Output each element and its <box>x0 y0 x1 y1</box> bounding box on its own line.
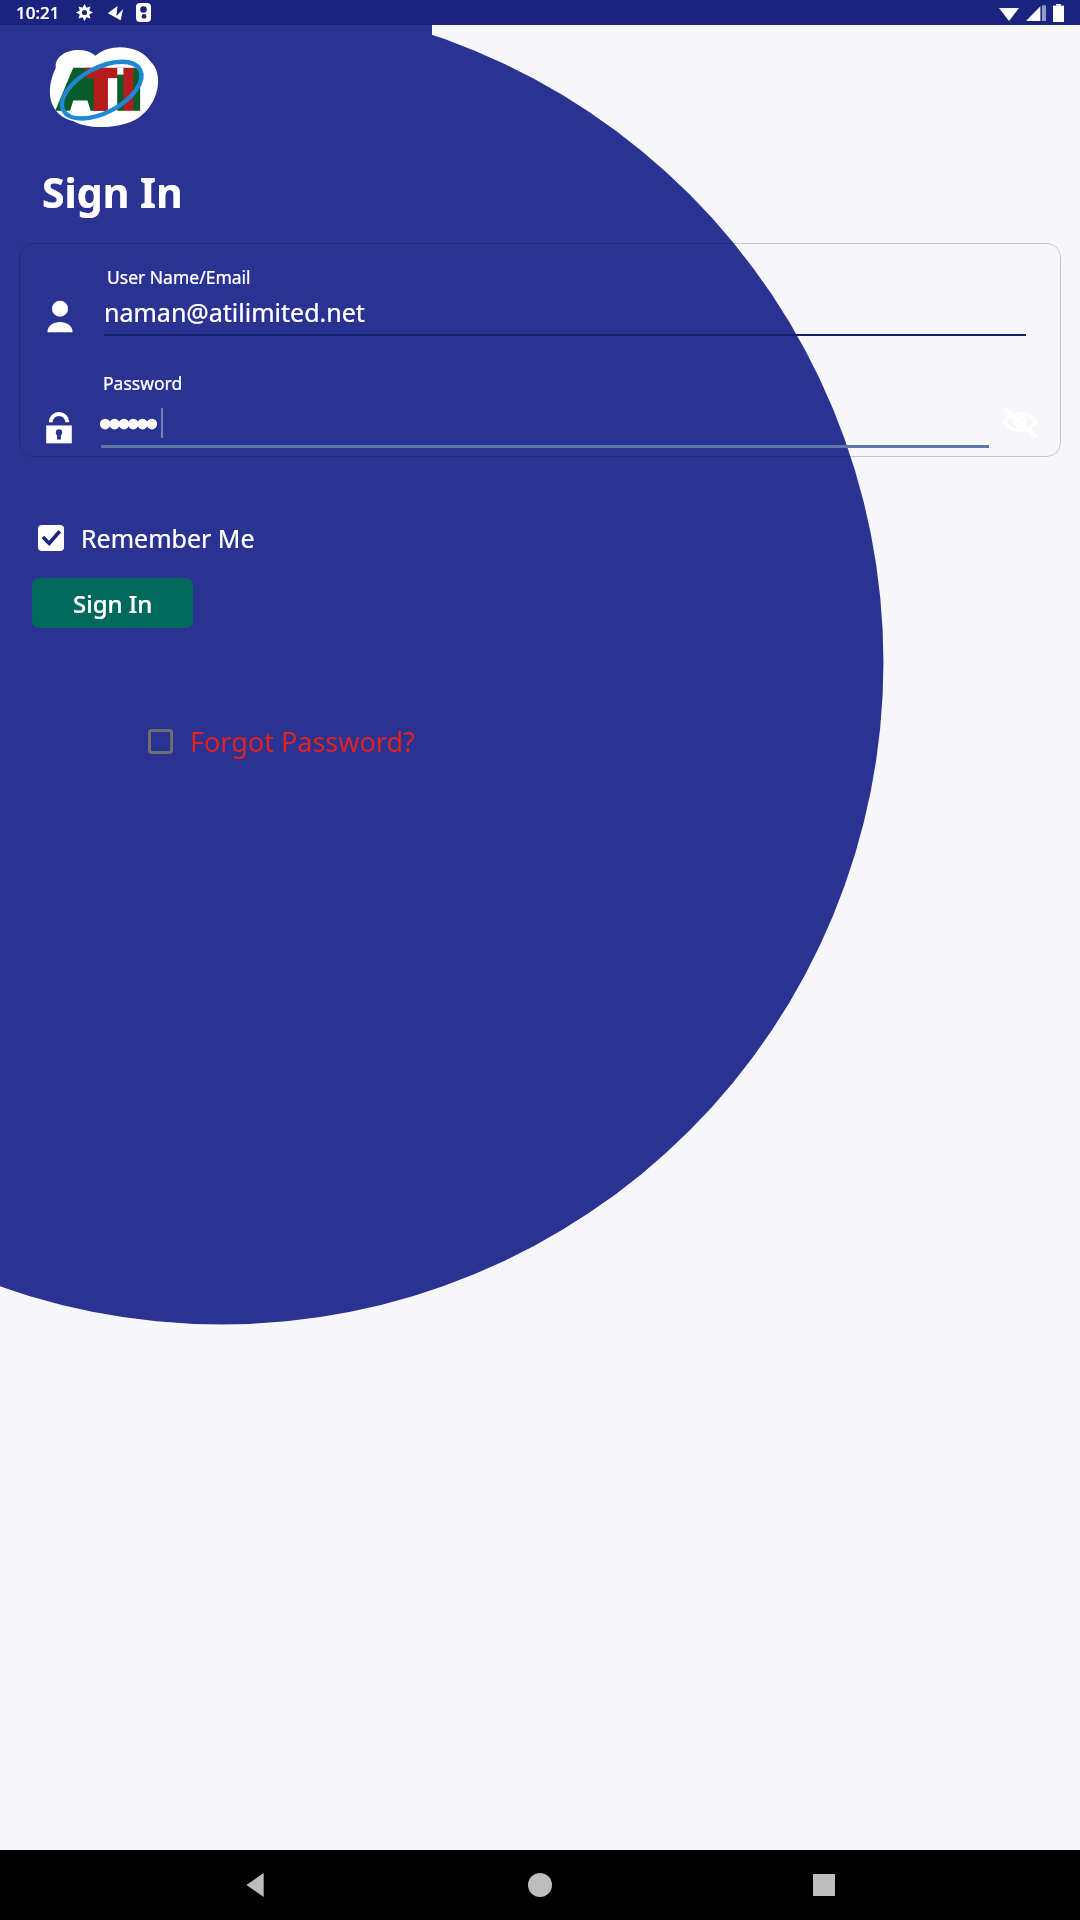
button[interactable]: Forgot Password? <box>148 723 1080 760</box>
staticText: Sign In <box>42 164 183 220</box>
staticText: User Name/Email <box>107 265 251 289</box>
button[interactable]: Remember Me <box>38 521 255 555</box>
button[interactable]: naman@atilimited.net <box>43 295 1026 336</box>
staticText: Remember Me <box>81 521 255 555</box>
staticText: Password <box>103 371 183 395</box>
button[interactable]: Show password <box>999 401 1041 443</box>
staticText: 10:21 <box>16 1 60 24</box>
button[interactable]: Sign In <box>32 578 193 628</box>
staticText: Sign In <box>73 587 153 620</box>
button[interactable]: Back <box>228 1857 284 1913</box>
staticText: Forgot Password? <box>190 723 415 760</box>
button[interactable]: Recent apps <box>796 1857 852 1913</box>
button[interactable]: Show password <box>43 401 1041 455</box>
button[interactable]: Home <box>512 1857 568 1913</box>
staticText: naman@atilimited.net <box>104 295 365 329</box>
